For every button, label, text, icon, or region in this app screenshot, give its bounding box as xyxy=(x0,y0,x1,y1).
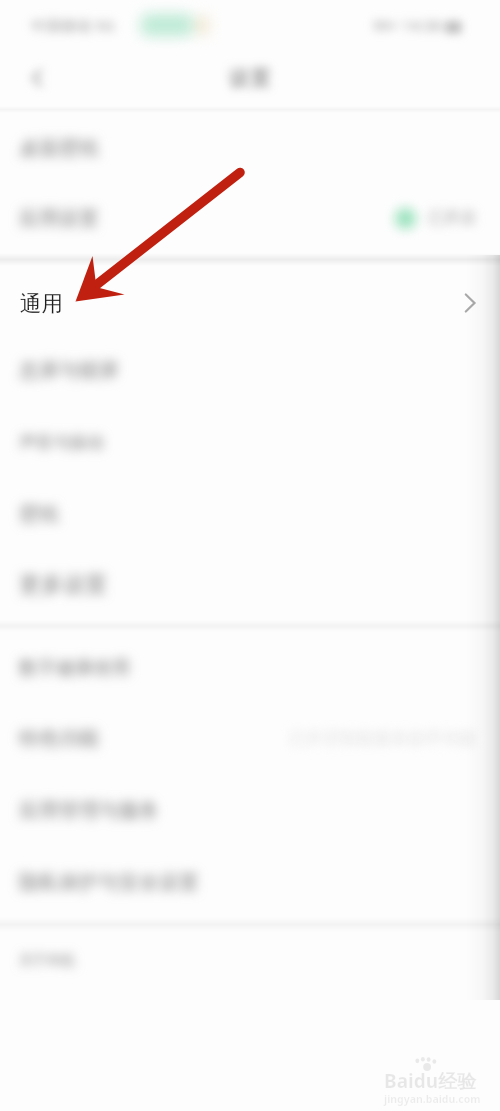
staticText: 壁纸 xyxy=(19,502,59,527)
button[interactable]: 息屏与锁屏 xyxy=(0,335,500,406)
staticText: 更多设置 xyxy=(19,571,107,599)
button[interactable]: Back xyxy=(24,65,50,91)
button[interactable]: 更多设置 xyxy=(0,550,500,620)
staticText: 应用设置 xyxy=(19,206,99,231)
button[interactable]: 通用 xyxy=(0,266,500,335)
staticText: 中国移动 5G xyxy=(31,15,115,35)
button[interactable]: 关于本机 xyxy=(0,932,500,990)
button[interactable]: 应用设置 xyxy=(0,183,500,253)
staticText: 关于本机 xyxy=(19,952,75,970)
staticText: 声音与振动 xyxy=(19,432,104,453)
staticText: 应用管理与服务 xyxy=(19,798,159,823)
button[interactable]: 桌面壁纸 xyxy=(0,113,500,183)
button[interactable]: 数字健康使用 xyxy=(0,632,500,703)
staticText: 特色功能 xyxy=(19,726,99,751)
staticText: 99+ 14:38 ▮▮ xyxy=(373,15,462,35)
button[interactable]: 壁纸 xyxy=(0,478,500,550)
staticText: jingyan.baidu.com xyxy=(384,1092,481,1106)
staticText: 桌面壁纸 xyxy=(19,136,99,161)
staticText: 通用 xyxy=(20,290,63,317)
staticText: 息屏与锁屏 xyxy=(19,358,119,383)
button[interactable]: 特色功能 xyxy=(0,703,500,774)
button[interactable]: 应用管理与服务 xyxy=(0,774,500,847)
staticText: 设置 xyxy=(229,65,271,91)
staticText: 数字健康使用 xyxy=(19,656,130,679)
staticText: Baidu经验 xyxy=(384,1068,477,1094)
button[interactable]: 声音与振动 xyxy=(0,406,500,478)
staticText: 隐私保护与安全设置 xyxy=(19,870,199,895)
button[interactable]: 隐私保护与安全设置 xyxy=(0,847,500,917)
staticText: 已开启 xyxy=(428,208,476,228)
